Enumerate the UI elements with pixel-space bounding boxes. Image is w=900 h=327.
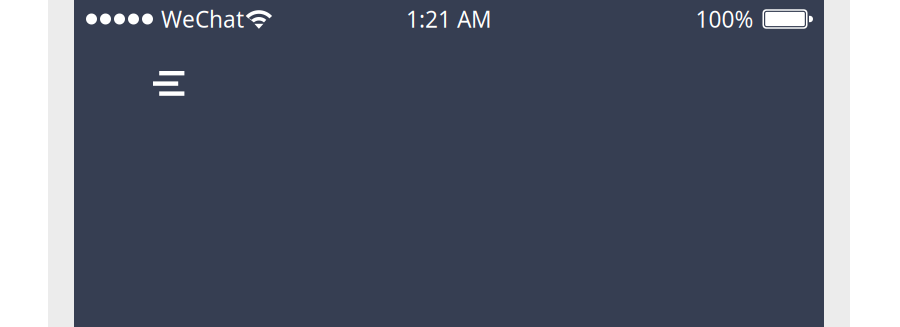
button[interactable]: Menu xyxy=(74,38,204,110)
staticText: WeChat xyxy=(161,4,244,34)
staticText: 1:21 AM xyxy=(406,4,492,34)
staticText: 100% xyxy=(695,4,753,34)
